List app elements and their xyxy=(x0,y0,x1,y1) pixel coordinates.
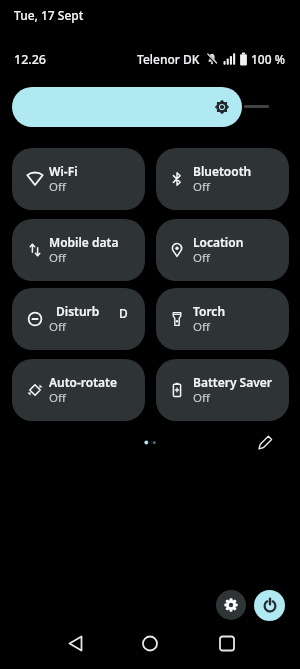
button[interactable] xyxy=(60,628,90,658)
staticText: Off xyxy=(49,319,66,335)
button[interactable] xyxy=(212,628,242,658)
button[interactable] xyxy=(216,590,246,620)
staticText: Off xyxy=(193,390,210,406)
staticText: D xyxy=(119,305,128,321)
button[interactable]: Auto-rotate xyxy=(12,359,145,421)
button[interactable]: Battery Saver xyxy=(156,359,289,421)
button[interactable]: Wi-Fi xyxy=(12,148,145,210)
button[interactable]: Disturb xyxy=(12,288,145,350)
staticText: Off xyxy=(193,250,210,266)
staticText: 12.26 xyxy=(14,51,47,68)
staticText: Off xyxy=(49,179,66,195)
button[interactable] xyxy=(250,430,278,458)
staticText: Off xyxy=(49,390,66,406)
staticText: Location xyxy=(193,234,244,250)
staticText: Disturb xyxy=(56,303,100,319)
staticText: Battery Saver xyxy=(193,374,273,390)
staticText: Bluetooth xyxy=(193,163,252,179)
staticText: Wi-Fi xyxy=(49,163,78,179)
staticText: Mobile data xyxy=(49,234,119,250)
button[interactable]: Torch xyxy=(156,288,289,350)
staticText: Telenor DK xyxy=(137,51,200,67)
staticText: Torch xyxy=(193,303,226,319)
button[interactable]: Mobile data xyxy=(12,219,145,281)
button[interactable]: Location xyxy=(156,219,289,281)
staticText: Off xyxy=(193,319,210,335)
staticText: 100 % xyxy=(251,51,285,67)
staticText: Auto-rotate xyxy=(49,374,117,390)
staticText: Tue, 17 Sept xyxy=(14,7,84,23)
staticText: Off xyxy=(193,179,210,195)
button[interactable] xyxy=(12,87,242,127)
button[interactable]: Bluetooth xyxy=(156,148,289,210)
staticText: Off xyxy=(49,250,66,266)
button[interactable] xyxy=(254,590,285,621)
button[interactable] xyxy=(135,628,165,658)
